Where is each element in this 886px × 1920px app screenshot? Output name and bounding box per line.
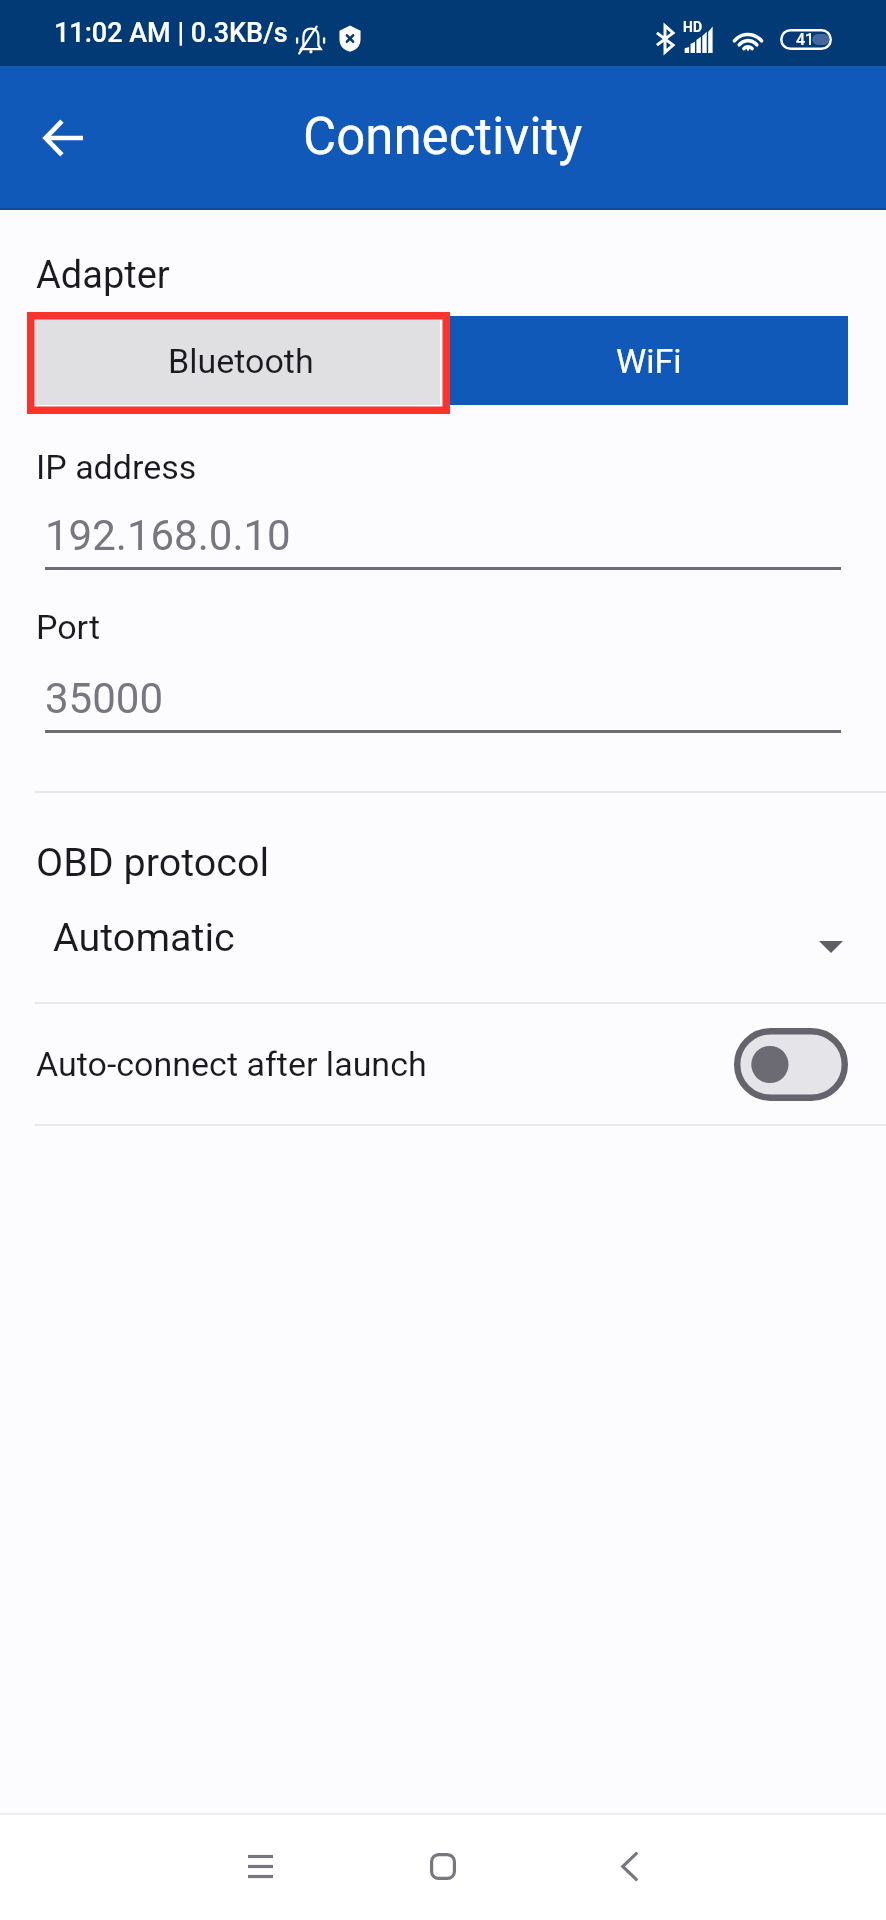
button[interactable]: Home xyxy=(391,1815,495,1920)
button[interactable]: Back xyxy=(577,1815,681,1920)
button[interactable]: Back xyxy=(21,96,105,180)
staticText: WiFi xyxy=(616,341,682,381)
button[interactable]: Auto-connect after launch xyxy=(0,1004,886,1124)
button[interactable]: WiFi xyxy=(449,316,848,405)
button[interactable]: 192.168.0.10 xyxy=(45,500,841,570)
button[interactable]: Bluetooth xyxy=(35,316,440,405)
staticText: 192.168.0.10 xyxy=(45,511,291,560)
staticText: Adapter xyxy=(36,253,170,298)
staticText: HD xyxy=(683,19,702,35)
button[interactable]: Automatic xyxy=(0,900,886,974)
staticText: 41 xyxy=(796,30,815,49)
button[interactable]: Recent apps xyxy=(208,1815,312,1920)
staticText: Port xyxy=(36,607,101,647)
staticText: Connectivity xyxy=(303,107,583,167)
staticText: IP address xyxy=(36,447,197,487)
staticText: Auto-connect after launch xyxy=(36,1044,427,1084)
staticText: 35000 xyxy=(45,674,164,723)
staticText: 11:02 AM | 0.3KB/s xyxy=(54,17,288,49)
staticText: Bluetooth xyxy=(168,341,314,381)
button[interactable]: 35000 xyxy=(45,663,841,733)
staticText: OBD protocol xyxy=(36,839,270,885)
staticText: Automatic xyxy=(53,914,235,960)
